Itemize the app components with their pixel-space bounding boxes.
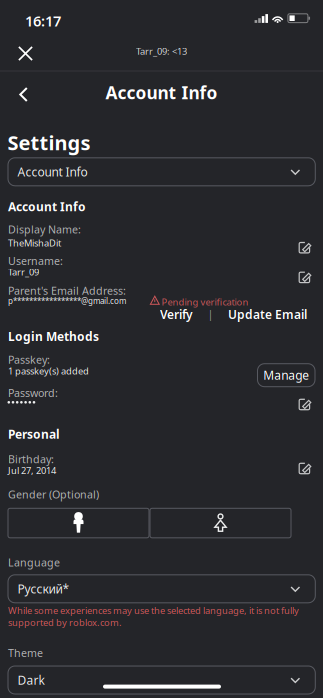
staticText: Birthday: bbox=[8, 452, 54, 466]
staticText: Tarr_09: <13 bbox=[136, 45, 187, 57]
staticText: | bbox=[207, 307, 213, 321]
staticText: Username: bbox=[8, 254, 63, 268]
staticText: Passkey: bbox=[8, 352, 50, 367]
button[interactable]: Account Info bbox=[8, 158, 315, 186]
staticText: Account Info bbox=[17, 164, 87, 180]
button[interactable]: Edit Birthday bbox=[298, 462, 312, 474]
staticText: Update Email bbox=[228, 306, 307, 322]
staticText: Jul 27, 2014 bbox=[8, 464, 56, 477]
button[interactable]: Edit Password bbox=[298, 398, 312, 410]
staticText: Parent's Email Address: bbox=[8, 283, 126, 298]
button[interactable]: Close bbox=[11, 39, 40, 68]
button[interactable]: Manage bbox=[257, 364, 315, 387]
button[interactable]: Female bbox=[150, 508, 291, 538]
staticText: While some experiences may use the selec… bbox=[8, 604, 299, 616]
staticText: supported by roblox.com. bbox=[8, 616, 122, 628]
staticText: TheMishaDit bbox=[8, 237, 61, 249]
button[interactable]: Verify bbox=[160, 306, 193, 322]
staticText: Settings bbox=[7, 129, 90, 156]
staticText: Display Name: bbox=[8, 222, 81, 236]
staticText: Dark bbox=[17, 672, 44, 688]
staticText: Account Info bbox=[8, 199, 86, 215]
staticText: Gender (Optional) bbox=[8, 487, 99, 501]
button[interactable]: Update Email bbox=[228, 306, 307, 322]
staticText: Pending verification bbox=[161, 296, 248, 308]
staticText: Login Methods bbox=[8, 328, 99, 344]
staticText: Password: bbox=[8, 386, 58, 400]
staticText: Manage bbox=[263, 367, 309, 383]
staticText: Theme bbox=[8, 646, 43, 660]
staticText: Tarr_09 bbox=[8, 266, 39, 278]
staticText: 16:17 bbox=[25, 11, 61, 30]
staticText: Language bbox=[8, 555, 60, 569]
button[interactable]: Back bbox=[12, 80, 36, 109]
staticText: Personal bbox=[8, 426, 60, 442]
staticText: Verify bbox=[160, 306, 193, 322]
button[interactable]: Dark bbox=[8, 666, 315, 694]
button[interactable]: Edit Display Name bbox=[298, 242, 312, 254]
staticText: p*****************@gmail.com bbox=[8, 296, 126, 306]
staticText: Русский* bbox=[17, 581, 69, 597]
staticText: 1 passkey(s) added bbox=[8, 365, 89, 377]
staticText: Account Info bbox=[105, 81, 217, 104]
button[interactable]: Male bbox=[8, 508, 149, 538]
button[interactable]: Русский* bbox=[8, 575, 315, 603]
button[interactable]: Edit Username bbox=[298, 271, 312, 283]
